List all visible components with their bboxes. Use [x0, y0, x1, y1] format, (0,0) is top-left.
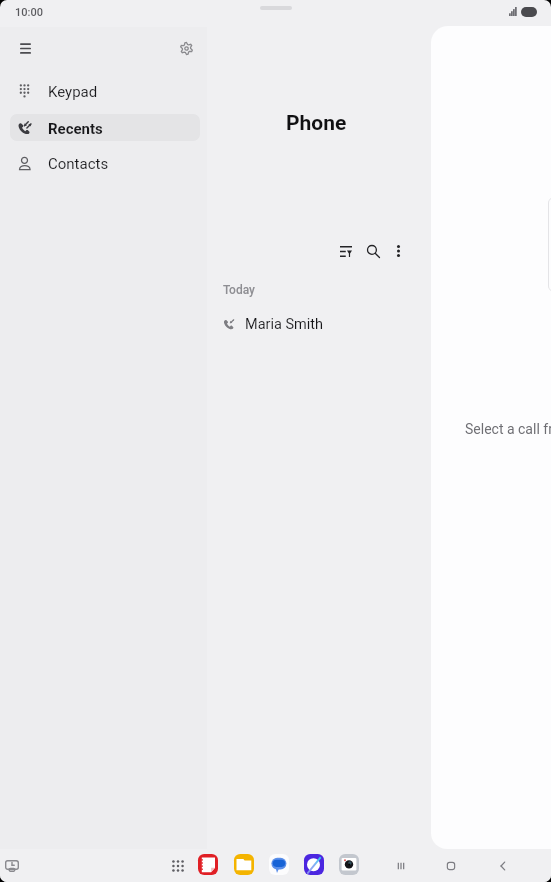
button[interactable]: Recent apps: [390, 855, 412, 877]
button[interactable]: Settings: [170, 32, 202, 64]
button[interactable]: Apps: [167, 855, 188, 876]
staticText: Select a call from the list: [465, 421, 551, 437]
button[interactable]: Internet: [304, 854, 324, 875]
button[interactable]: Sort: [333, 238, 359, 264]
button[interactable]: More options: [385, 238, 411, 264]
button[interactable]: Screen timeout: [1, 855, 23, 877]
staticText: Contacts: [48, 155, 109, 173]
button[interactable]: Keypad: [10, 77, 200, 104]
button[interactable]: My Files: [234, 854, 254, 875]
button[interactable]: Home: [440, 855, 462, 877]
button[interactable]: Contacts: [10, 149, 200, 176]
button[interactable]: Open navigation menu: [9, 32, 41, 64]
staticText: Keypad: [48, 83, 98, 101]
button[interactable]: Back: [492, 855, 514, 877]
staticText: Recents: [48, 120, 103, 138]
button[interactable]: Messages: [269, 854, 289, 875]
staticText: Maria Smith: [245, 316, 324, 333]
button[interactable]: Recents: [10, 114, 200, 141]
button[interactable]: Camera: [339, 854, 359, 875]
staticText: Today: [223, 283, 255, 297]
staticText: Phone: [286, 111, 347, 136]
button[interactable]: Search: [360, 238, 386, 264]
button[interactable]: Maria Smith: [207, 311, 430, 337]
button[interactable]: Samsung Notes: [198, 854, 218, 875]
staticText: 10:00: [15, 6, 43, 19]
